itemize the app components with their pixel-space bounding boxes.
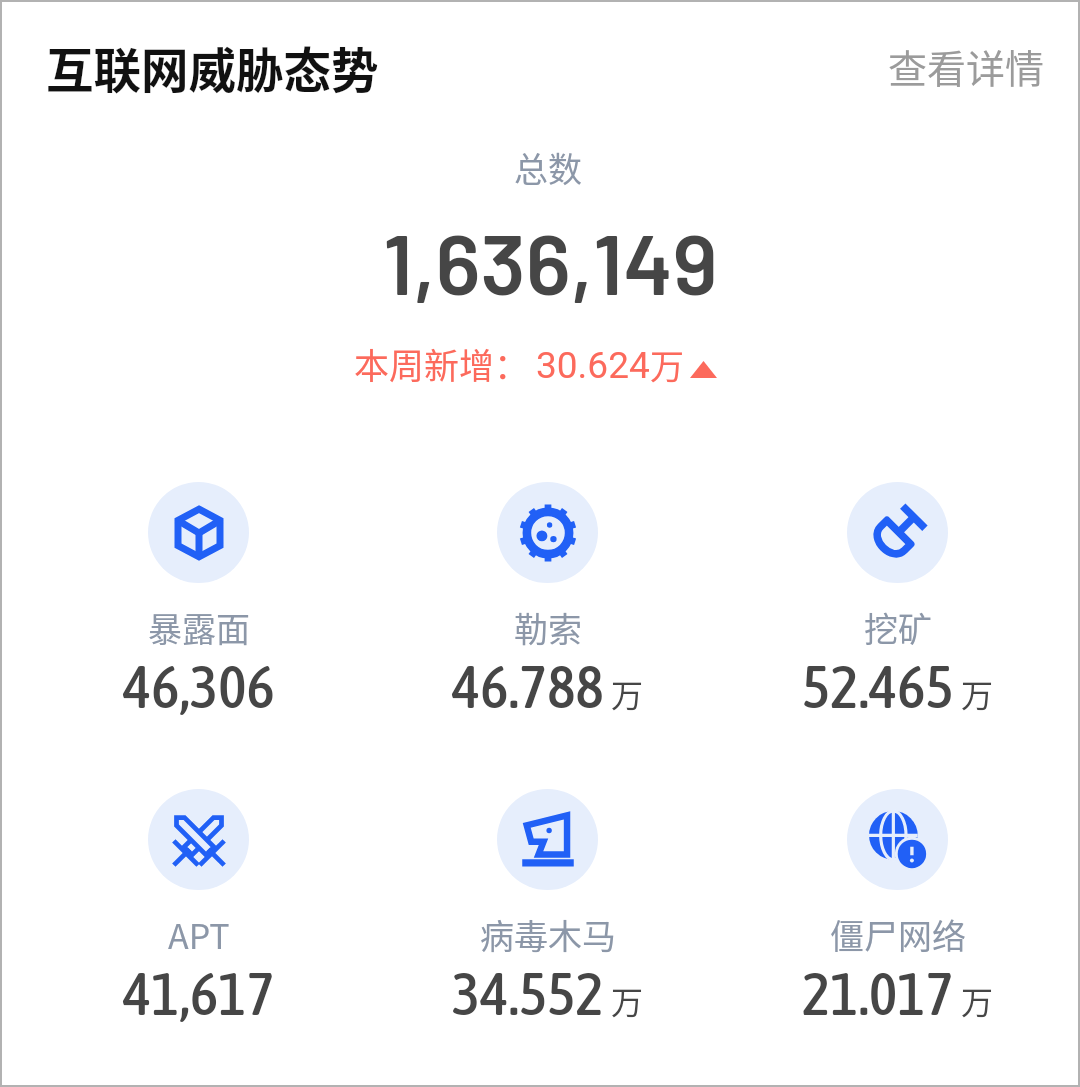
staticText: 46,306 (123, 652, 275, 721)
staticText: 暴露面 (148, 603, 250, 652)
staticText: 万 (961, 977, 994, 1023)
button[interactable]: 病毒木马 (403, 773, 693, 1035)
staticText: APT (168, 910, 230, 959)
other: 暴露面 (148, 482, 249, 583)
staticText: 34.552 (452, 959, 604, 1028)
button[interactable]: 挖矿 (753, 466, 1043, 728)
staticText: 挖矿 (864, 603, 932, 652)
staticText: 21.017 (802, 959, 954, 1028)
button[interactable]: APT (54, 773, 344, 1035)
staticText: 46.788 (452, 652, 604, 721)
staticText: 52.465 (802, 652, 954, 721)
staticText: 勒索 (514, 603, 582, 652)
staticText: 30.624 (536, 344, 650, 387)
button[interactable]: 互联网威胁态势 (39, 26, 386, 109)
staticText: 僵尸网络 (830, 910, 966, 959)
button[interactable]: 查看详情 (881, 31, 1052, 101)
staticText: 总数 (514, 143, 582, 192)
staticText: 病毒木马 (480, 910, 616, 959)
staticText: 万 (650, 340, 684, 389)
button[interactable]: 勒索 (403, 466, 693, 728)
staticText: 查看详情 (888, 38, 1045, 94)
other: 勒索 (497, 482, 598, 583)
staticText: 41,617 (123, 959, 275, 1028)
staticText: 万 (611, 670, 644, 716)
button[interactable]: 僵尸网络 (753, 773, 1043, 1035)
button[interactable]: 暴露面 (54, 466, 344, 728)
other: 病毒木马 (497, 789, 598, 890)
staticText: 本周新增： (354, 338, 530, 389)
staticText: 万 (611, 977, 644, 1023)
other: 挖矿 (847, 482, 948, 583)
staticText: 万 (961, 670, 994, 716)
other: APT (148, 789, 249, 890)
staticText: 互联网威胁态势 (46, 33, 379, 102)
staticText: 1,636,149 (383, 210, 718, 312)
other: 僵尸网络 (847, 789, 948, 890)
